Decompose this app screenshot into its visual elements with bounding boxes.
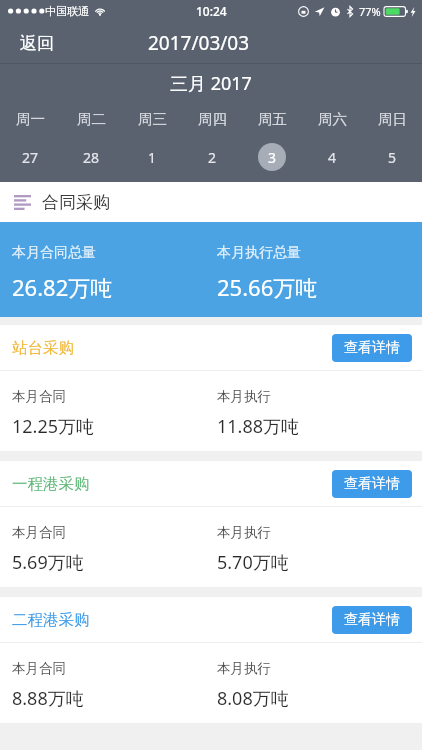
staticText: 本月执行 <box>217 524 271 541</box>
staticText: 77% <box>359 4 381 19</box>
staticText: 4 <box>328 148 337 167</box>
staticText: 周六 <box>318 110 347 128</box>
staticText: 本月执行总量 <box>217 244 301 262</box>
staticText: 周五 <box>258 110 287 128</box>
staticText: 本月合同 <box>12 660 66 677</box>
staticText: 11.88万吨 <box>217 414 300 439</box>
staticText: 1 <box>148 148 157 167</box>
staticText: 二程港采购 <box>12 610 90 630</box>
button[interactable]: 查看详情 <box>332 470 412 498</box>
staticText: 本月执行 <box>217 660 271 677</box>
staticText: 返回 <box>20 33 54 54</box>
staticText: 一程港采购 <box>12 474 90 494</box>
staticText: 8.88万吨 <box>12 686 84 711</box>
staticText: 本月合同总量 <box>12 244 96 262</box>
staticText: 本月合同 <box>12 388 66 405</box>
staticText: 周一 <box>16 110 45 128</box>
staticText: 本月合同 <box>12 524 66 541</box>
button[interactable]: 返回 <box>0 25 74 62</box>
staticText: 26.82万吨 <box>12 272 113 302</box>
staticText: 12.25万吨 <box>12 414 95 439</box>
button[interactable]: 查看详情 <box>332 334 412 362</box>
staticText: 周日 <box>378 110 407 128</box>
button[interactable]: 1 <box>122 136 182 178</box>
staticText: 三月 2017 <box>170 71 252 96</box>
staticText: 27 <box>22 148 39 167</box>
staticText: 8.08万吨 <box>217 686 289 711</box>
staticText: 站台采购 <box>12 338 74 358</box>
staticText: 周四 <box>198 110 227 128</box>
staticText: 28 <box>83 148 100 167</box>
staticText: 合同采购 <box>42 192 110 213</box>
staticText: 5.69万吨 <box>12 550 84 575</box>
button[interactable]: 4 <box>302 136 362 178</box>
staticText: 5.70万吨 <box>217 550 289 575</box>
staticText: 2 <box>208 148 217 167</box>
staticText: 3 <box>268 148 277 167</box>
staticText: 周三 <box>138 110 167 128</box>
staticText: 本月执行 <box>217 388 271 405</box>
staticText: 查看详情 <box>344 339 400 357</box>
staticText: 中国联通 <box>45 4 89 18</box>
button[interactable]: 27 <box>0 136 61 178</box>
staticText: 查看详情 <box>344 611 400 629</box>
staticText: 查看详情 <box>344 475 400 493</box>
button[interactable]: 合同采购 <box>0 182 422 222</box>
staticText: 10:24 <box>196 3 227 19</box>
staticText: 25.66万吨 <box>217 272 318 302</box>
staticText: 周二 <box>77 110 106 128</box>
button[interactable]: 3 <box>242 136 302 178</box>
button[interactable]: 28 <box>61 136 122 178</box>
button[interactable]: 查看详情 <box>332 606 412 634</box>
button[interactable]: 5 <box>362 136 422 178</box>
staticText: 2017/03/03 <box>148 30 250 56</box>
staticText: 5 <box>388 148 397 167</box>
button[interactable]: 2 <box>182 136 242 178</box>
